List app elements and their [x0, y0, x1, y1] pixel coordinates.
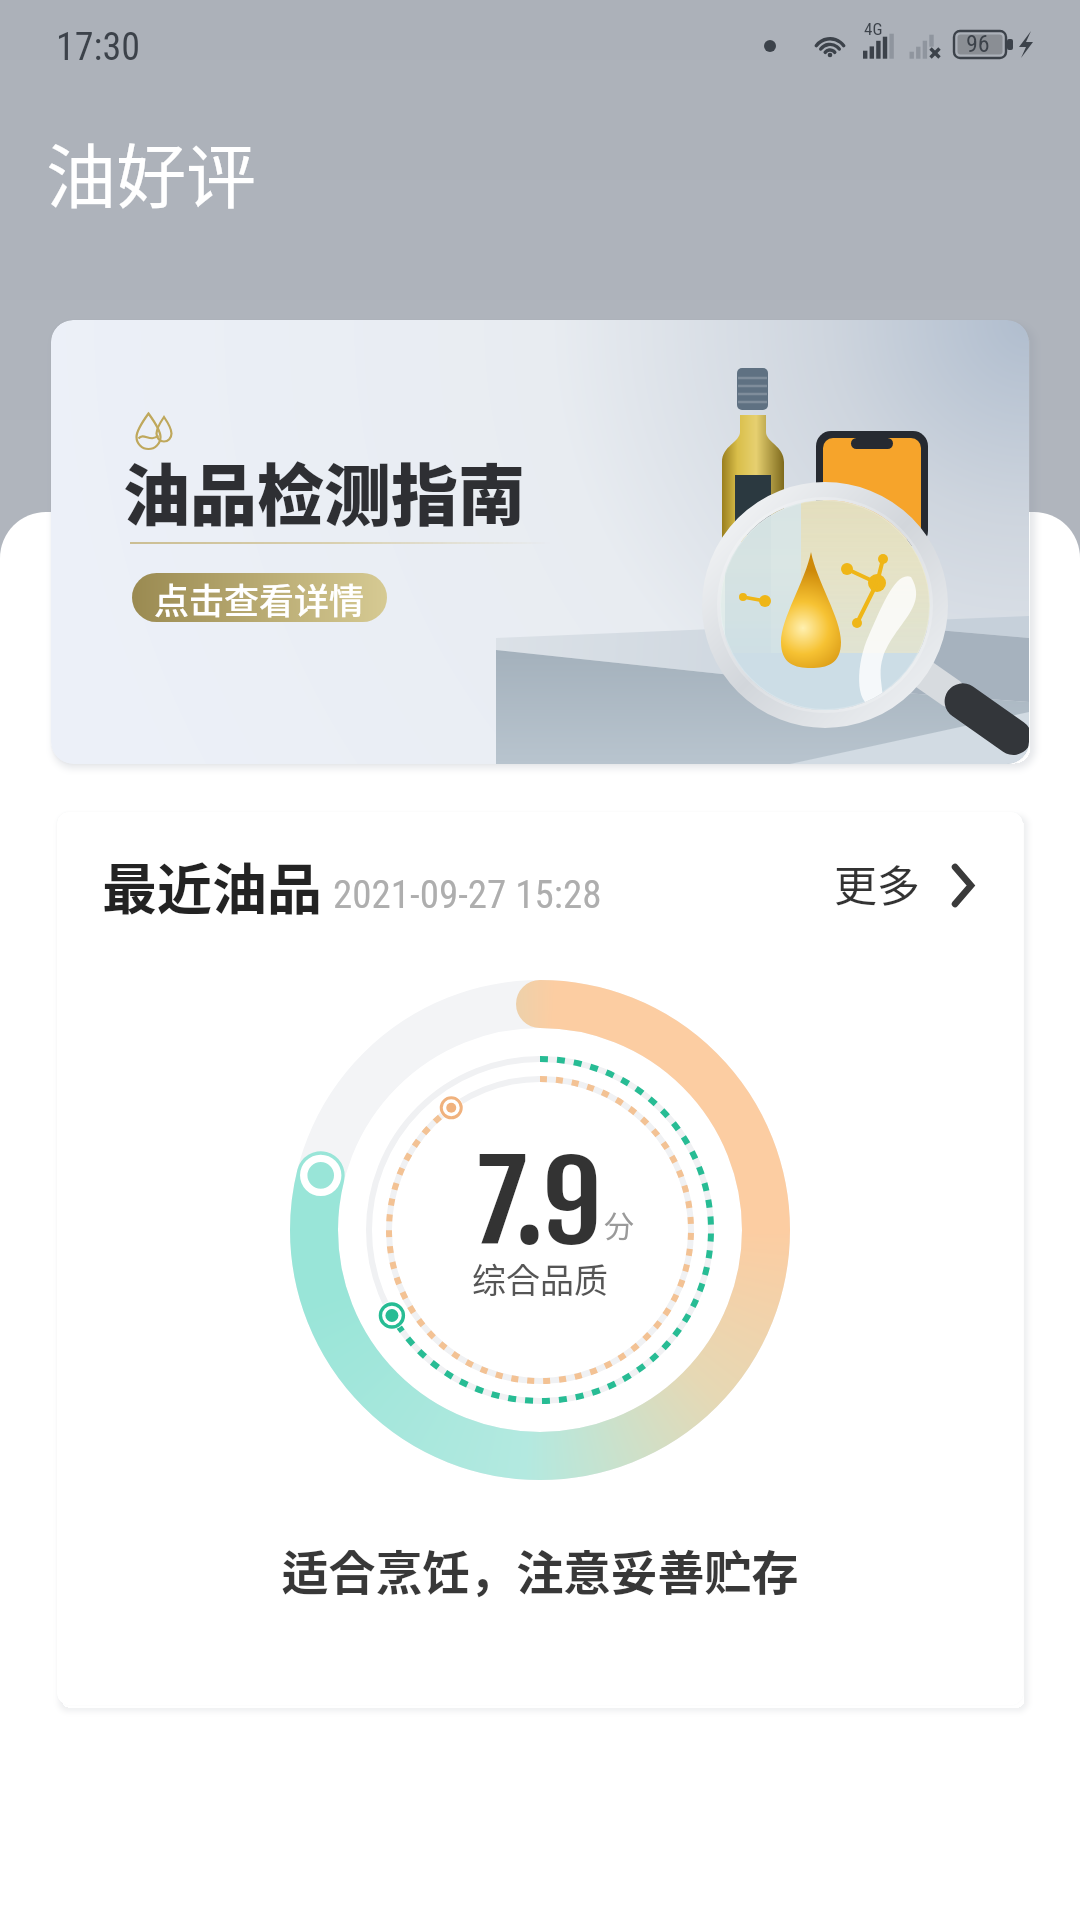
staticText: 4G: [864, 19, 883, 39]
staticText: 96: [966, 30, 990, 58]
staticText: 综合品质: [57, 1254, 1023, 1303]
staticText: 更多: [834, 852, 920, 914]
staticText: 油好评: [46, 122, 256, 223]
staticText: 点击查看详情: [154, 573, 365, 622]
button[interactable]: 更多: [832, 850, 1023, 922]
other: 更多: [947, 857, 1007, 917]
staticText: 17:30: [56, 25, 140, 70]
staticText: 2021-09-27 15:28: [333, 872, 602, 918]
staticText: 最近油品: [102, 845, 323, 925]
staticText: 7.9: [57, 1136, 1023, 1270]
staticText: 适合烹饪，注意妥善贮存: [57, 1535, 1023, 1603]
button[interactable]: 油品检测指南: [51, 320, 1029, 764]
staticText: 油品检测指南: [123, 442, 525, 539]
button[interactable]: 点击查看详情: [132, 573, 387, 622]
staticText: 分: [604, 1202, 634, 1245]
